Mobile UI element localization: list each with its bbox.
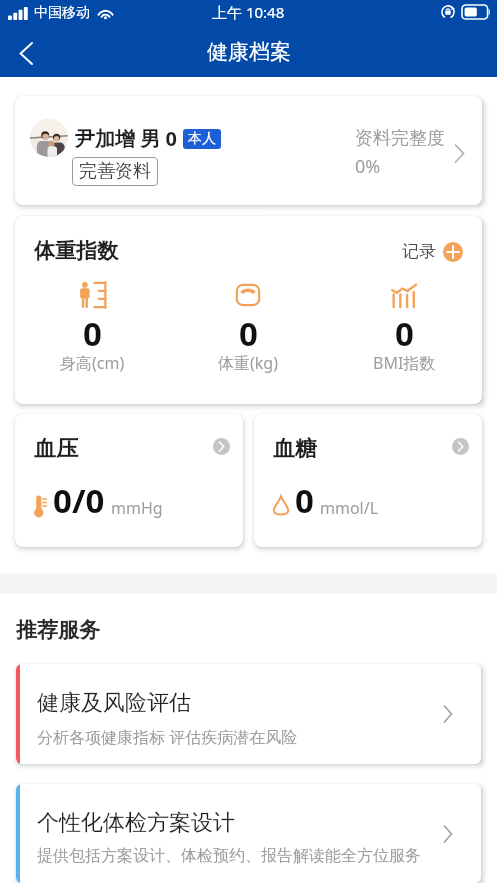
button[interactable]: 健康及风险评估 bbox=[16, 664, 481, 764]
staticText: 健康档案 bbox=[207, 39, 291, 65]
button[interactable]: 个性化体检方案设计 bbox=[16, 784, 481, 883]
staticText: 体重(kg) bbox=[218, 352, 278, 374]
button[interactable]: 血压 bbox=[15, 414, 243, 547]
button[interactable]: 0 bbox=[15, 281, 170, 378]
staticText: 个性化体检方案设计 bbox=[37, 809, 235, 837]
staticText: 中国移动 bbox=[34, 4, 90, 22]
staticText: 0/0 bbox=[53, 478, 105, 523]
staticText: 提供包括方案设计、体检预约、报告解读能全方位服务 bbox=[37, 846, 421, 866]
staticText: 0% bbox=[355, 154, 381, 179]
button[interactable]: 尹加增 男 0 bbox=[15, 96, 482, 205]
button[interactable]: 0 bbox=[326, 281, 482, 378]
staticText: 0 bbox=[83, 311, 102, 356]
staticText: 体重指数 bbox=[34, 238, 118, 264]
staticText: 记录 bbox=[402, 241, 436, 262]
staticText: 分析各项健康指标 评估疾病潜在风险 bbox=[37, 726, 298, 748]
staticText: 推荐服务 bbox=[16, 617, 100, 643]
button[interactable]: 完善资料 bbox=[72, 157, 158, 186]
staticText: mmol/L bbox=[320, 497, 379, 519]
button[interactable]: Back bbox=[4, 31, 48, 75]
staticText: 上午 10:48 bbox=[212, 2, 285, 22]
staticText: 0 bbox=[295, 478, 314, 523]
button[interactable]: 0 bbox=[170, 281, 326, 378]
staticText: 资料完整度 bbox=[355, 127, 445, 150]
button[interactable]: 记录 bbox=[402, 241, 463, 262]
staticText: 0 bbox=[239, 311, 258, 356]
staticText: 血压 bbox=[34, 435, 78, 463]
staticText: 血糖 bbox=[273, 435, 317, 463]
staticText: 0 bbox=[395, 311, 414, 356]
staticText: 身高(cm) bbox=[60, 352, 125, 374]
staticText: mmHg bbox=[111, 497, 163, 519]
staticText: 完善资料 bbox=[79, 160, 151, 183]
button[interactable]: 血糖 bbox=[254, 414, 482, 547]
staticText: 本人 bbox=[188, 130, 216, 148]
staticText: 健康及风险评估 bbox=[37, 689, 191, 717]
staticText: 尹加增 男 0 bbox=[75, 125, 177, 152]
staticText: BMI指数 bbox=[373, 352, 436, 374]
